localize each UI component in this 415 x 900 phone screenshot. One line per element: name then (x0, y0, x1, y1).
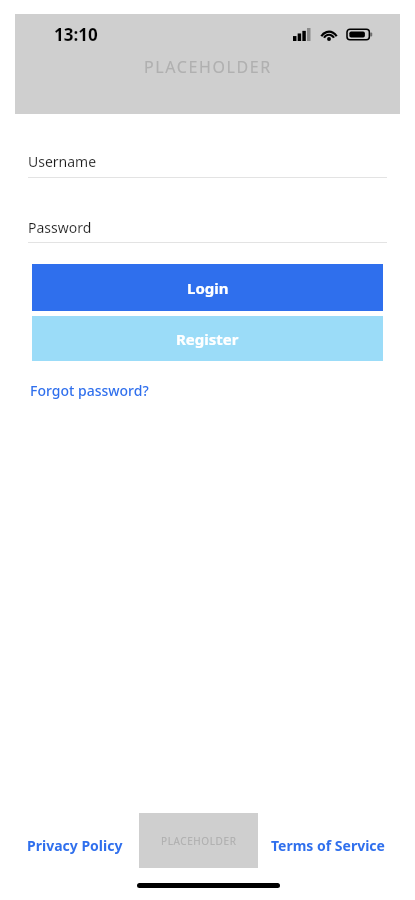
staticText: Privacy Policy (27, 836, 123, 855)
staticText: PLACEHOLDER (161, 834, 237, 848)
staticText: Login (187, 278, 229, 298)
other: Battery (347, 28, 373, 41)
button[interactable]: Login (32, 264, 383, 311)
staticText: Forgot password? (30, 381, 149, 400)
staticText: Terms of Service (271, 836, 385, 855)
staticText: Username (28, 152, 97, 171)
button[interactable]: Forgot password? (28, 379, 151, 402)
staticText: PLACEHOLDER (144, 56, 272, 78)
staticText: 13:10 (54, 23, 98, 46)
other: Cellular signal (293, 28, 311, 41)
button[interactable]: Terms of Service (269, 833, 387, 858)
other: Wi-Fi (320, 28, 338, 41)
staticText: Password (28, 218, 92, 237)
staticText: Register (176, 329, 239, 349)
button[interactable]: Privacy Policy (25, 833, 125, 858)
button[interactable]: Register (32, 316, 383, 361)
